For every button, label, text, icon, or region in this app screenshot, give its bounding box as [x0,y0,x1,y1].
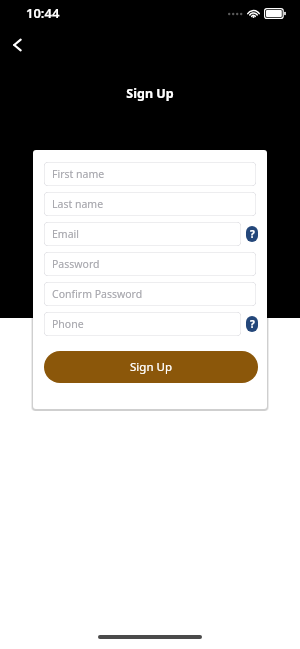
staticText: Sign Up [0,85,300,102]
staticText: ? [250,227,255,241]
staticText: Last name [52,197,104,211]
staticText: Confirm Password [52,287,143,301]
button[interactable]: Phone [44,312,241,336]
staticText: 10:44 [26,4,60,22]
button[interactable]: Password [44,252,256,276]
button[interactable]: Help [246,226,258,242]
button[interactable]: Email [44,222,241,246]
button[interactable]: Confirm Password [44,282,256,306]
staticText: Email [52,227,79,241]
staticText: Phone [52,317,84,331]
staticText: First name [52,167,105,181]
button[interactable]: Back [4,30,34,60]
staticText: Password [52,257,100,271]
button[interactable]: First name [44,162,256,186]
button[interactable]: Sign Up [44,351,258,383]
button[interactable]: Help [246,316,258,332]
staticText: ? [250,317,255,331]
button[interactable]: Last name [44,192,256,216]
staticText: Sign Up [130,359,172,375]
